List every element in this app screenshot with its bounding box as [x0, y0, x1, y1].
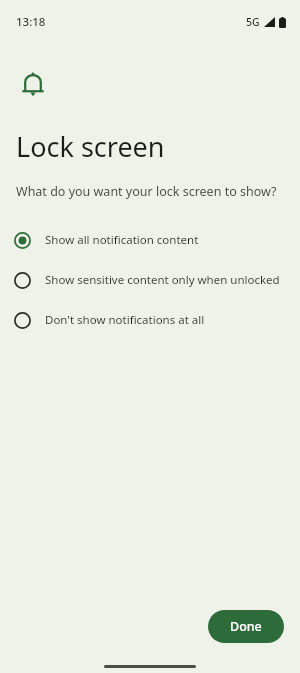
staticText: Don't show notifications at all: [45, 312, 205, 328]
button[interactable]: Show sensitive content only when unlocke…: [0, 260, 300, 300]
staticText: Show all notification content: [45, 232, 199, 248]
staticText: Show sensitive content only when unlocke…: [45, 272, 280, 288]
staticText: Lock screen: [16, 128, 165, 165]
staticText: 13:18: [16, 14, 46, 30]
staticText: 5G: [246, 15, 260, 29]
button[interactable]: Don't show notifications at all: [0, 300, 300, 340]
staticText: Done: [230, 618, 262, 635]
staticText: What do you want your lock screen to sho…: [16, 183, 277, 200]
button[interactable]: Done: [208, 610, 284, 643]
button[interactable]: Show all notification content: [0, 220, 300, 260]
